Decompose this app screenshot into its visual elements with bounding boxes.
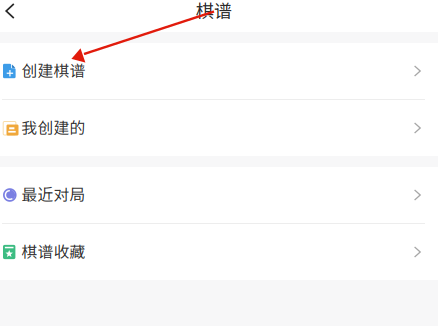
- button[interactable]: 创建棋谱: [0, 43, 438, 99]
- staticText: 棋谱收藏: [21, 240, 85, 262]
- staticText: 棋谱: [196, 0, 232, 23]
- button[interactable]: 我创建的: [0, 100, 438, 156]
- button[interactable]: 最近对局: [0, 167, 438, 223]
- staticText: 最近对局: [21, 183, 85, 205]
- button[interactable]: 棋谱收藏: [0, 224, 438, 280]
- staticText: 创建棋谱: [21, 59, 85, 81]
- button[interactable]: 返回: [0, 0, 21, 22]
- staticText: 我创建的: [21, 116, 85, 138]
